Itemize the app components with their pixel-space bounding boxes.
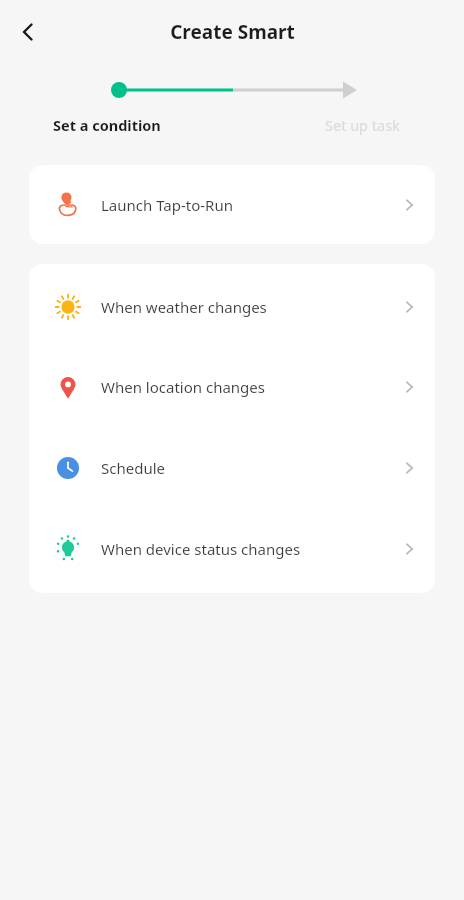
staticText: Launch Tap-to-Run	[101, 195, 233, 215]
staticText: Create Smart	[170, 19, 295, 45]
button[interactable]: When location changes	[29, 346, 435, 427]
staticText: When weather changes	[101, 297, 267, 317]
staticText: When location changes	[101, 377, 265, 397]
button[interactable]: Launch Tap-to-Run	[29, 165, 435, 244]
staticText: Set a condition	[53, 115, 161, 135]
button[interactable]: When weather changes	[29, 268, 435, 346]
staticText: When device status changes	[101, 539, 301, 559]
staticText: Set up task	[325, 115, 400, 135]
button[interactable]: Back	[6, 10, 50, 54]
staticText: Schedule	[101, 458, 165, 478]
button[interactable]: Schedule	[29, 427, 435, 508]
button[interactable]: When device status changes	[29, 508, 435, 589]
